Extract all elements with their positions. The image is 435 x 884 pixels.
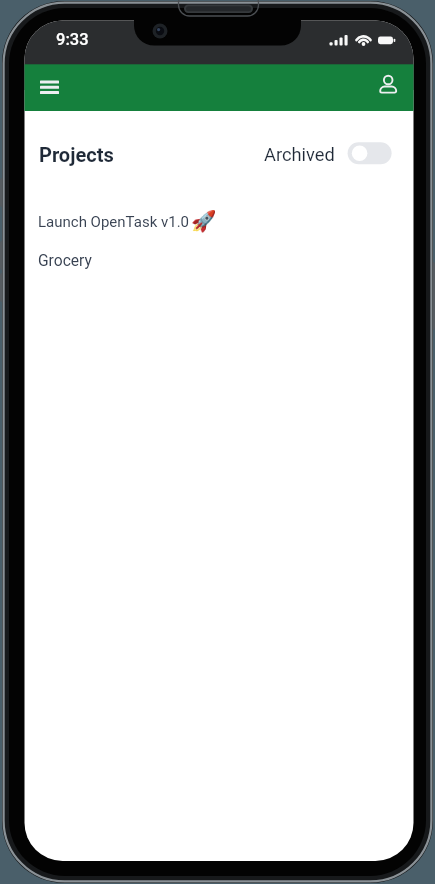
- staticText: Launch OpenTask v1.0: [38, 213, 190, 231]
- button[interactable]: [25, 242, 413, 282]
- button[interactable]: [375, 68, 409, 102]
- staticText: Grocery: [38, 252, 92, 270]
- staticText: Archived: [264, 144, 335, 165]
- button[interactable]: [32, 70, 67, 105]
- staticText: 9:33: [56, 30, 89, 49]
- staticText: 🚀: [191, 209, 217, 233]
- button[interactable]: [347, 142, 392, 164]
- button[interactable]: [25, 200, 413, 242]
- staticText: Projects: [39, 143, 114, 166]
